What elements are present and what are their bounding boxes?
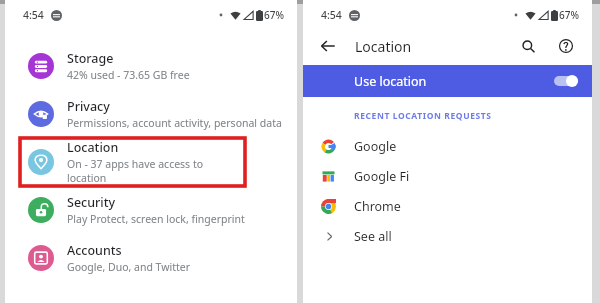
staticText: 4:54 <box>23 8 44 22</box>
button[interactable]: Search <box>517 35 539 57</box>
staticText: Privacy <box>67 98 110 115</box>
button[interactable]: Back <box>318 36 338 56</box>
button[interactable]: Google Fi <box>303 161 592 191</box>
staticText: 42% used - 73.65 GB free <box>67 68 190 82</box>
staticText: RECENT LOCATION REQUESTS <box>354 110 492 122</box>
button[interactable]: Google <box>303 131 592 161</box>
staticText: Permissions, account activity, personal … <box>67 116 282 130</box>
staticText: 67% <box>264 8 284 22</box>
staticText: Accounts <box>67 242 122 259</box>
button[interactable]: See all <box>303 221 592 251</box>
button[interactable]: Help <box>555 35 577 57</box>
staticText: Use location <box>354 73 427 90</box>
button[interactable]: Privacy <box>5 90 297 138</box>
staticText: Google <box>354 138 397 155</box>
staticText: Play Protect, screen lock, fingerprint <box>67 212 245 226</box>
button[interactable]: Accounts <box>5 234 297 282</box>
staticText: Location <box>355 37 412 56</box>
staticText: Google, Duo, and Twitter <box>67 260 191 274</box>
button[interactable]: Storage <box>5 42 297 90</box>
button[interactable]: Security <box>5 186 297 234</box>
button[interactable]: Chrome <box>303 191 592 221</box>
staticText: On - 37 apps have access to location <box>67 157 245 185</box>
staticText: Location <box>67 139 119 156</box>
staticText: Storage <box>67 50 114 67</box>
staticText: 67% <box>559 8 579 22</box>
staticText: Security <box>67 194 116 211</box>
staticText: 4:54 <box>321 8 342 22</box>
staticText: See all <box>354 228 392 245</box>
button[interactable]: Use location <box>303 65 592 97</box>
staticText: Google Fi <box>354 168 410 185</box>
button[interactable]: Location <box>20 138 245 186</box>
staticText: Chrome <box>354 198 401 215</box>
